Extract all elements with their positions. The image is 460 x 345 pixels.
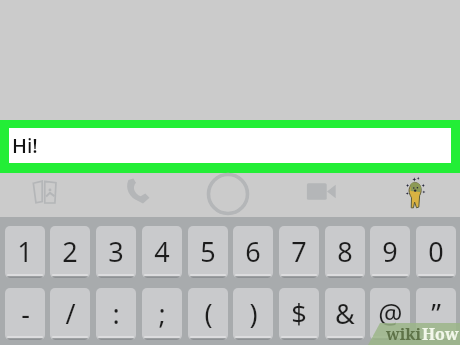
button[interactable]: Video call bbox=[306, 182, 336, 201]
staticText: 2 bbox=[62, 233, 78, 270]
staticText: 9 bbox=[382, 233, 398, 270]
staticText: $ bbox=[291, 295, 307, 332]
staticText: ” bbox=[431, 295, 441, 332]
button[interactable]: ” bbox=[416, 288, 456, 340]
button[interactable]: Stickers bbox=[402, 174, 430, 210]
button[interactable]: 5 bbox=[188, 226, 228, 278]
button[interactable]: Call bbox=[124, 178, 150, 204]
staticText: 4 bbox=[154, 233, 170, 270]
staticText: @ bbox=[378, 295, 403, 332]
button[interactable]: 0 bbox=[416, 226, 456, 278]
button[interactable]: 2 bbox=[50, 226, 90, 278]
staticText: 8 bbox=[337, 233, 353, 270]
button[interactable]: Record bbox=[206, 172, 250, 216]
staticText: Hi! bbox=[12, 132, 38, 159]
button[interactable]: 9 bbox=[370, 226, 410, 278]
button[interactable]: $ bbox=[279, 288, 319, 340]
staticText: 6 bbox=[245, 233, 261, 270]
button[interactable]: ( bbox=[188, 288, 228, 340]
staticText: ; bbox=[158, 295, 166, 332]
button[interactable]: 3 bbox=[96, 226, 136, 278]
button[interactable]: / bbox=[50, 288, 90, 340]
staticText: ( bbox=[204, 295, 213, 332]
staticText: - bbox=[21, 295, 30, 332]
staticText: / bbox=[65, 295, 76, 332]
button[interactable]: 7 bbox=[279, 226, 319, 278]
staticText: 5 bbox=[200, 233, 216, 270]
button[interactable]: 4 bbox=[142, 226, 182, 278]
button[interactable]: 8 bbox=[325, 226, 365, 278]
button[interactable]: & bbox=[325, 288, 365, 340]
button[interactable]: Hi! bbox=[9, 128, 451, 163]
button[interactable]: @ bbox=[370, 288, 410, 340]
button[interactable]: 1 bbox=[5, 226, 45, 278]
button[interactable]: Contact card bbox=[31, 180, 57, 203]
button[interactable]: : bbox=[96, 288, 136, 340]
staticText: & bbox=[335, 295, 355, 332]
button[interactable]: - bbox=[5, 288, 45, 340]
staticText: 0 bbox=[428, 233, 444, 270]
button[interactable]: ) bbox=[233, 288, 273, 340]
staticText: : bbox=[112, 295, 120, 332]
staticText: 3 bbox=[108, 233, 124, 270]
staticText: ) bbox=[249, 295, 258, 332]
button[interactable]: ; bbox=[142, 288, 182, 340]
staticText: 7 bbox=[291, 233, 307, 270]
staticText: 1 bbox=[17, 233, 33, 270]
button[interactable]: 6 bbox=[233, 226, 273, 278]
staticText: How bbox=[422, 323, 459, 345]
staticText: wiki bbox=[386, 323, 422, 345]
